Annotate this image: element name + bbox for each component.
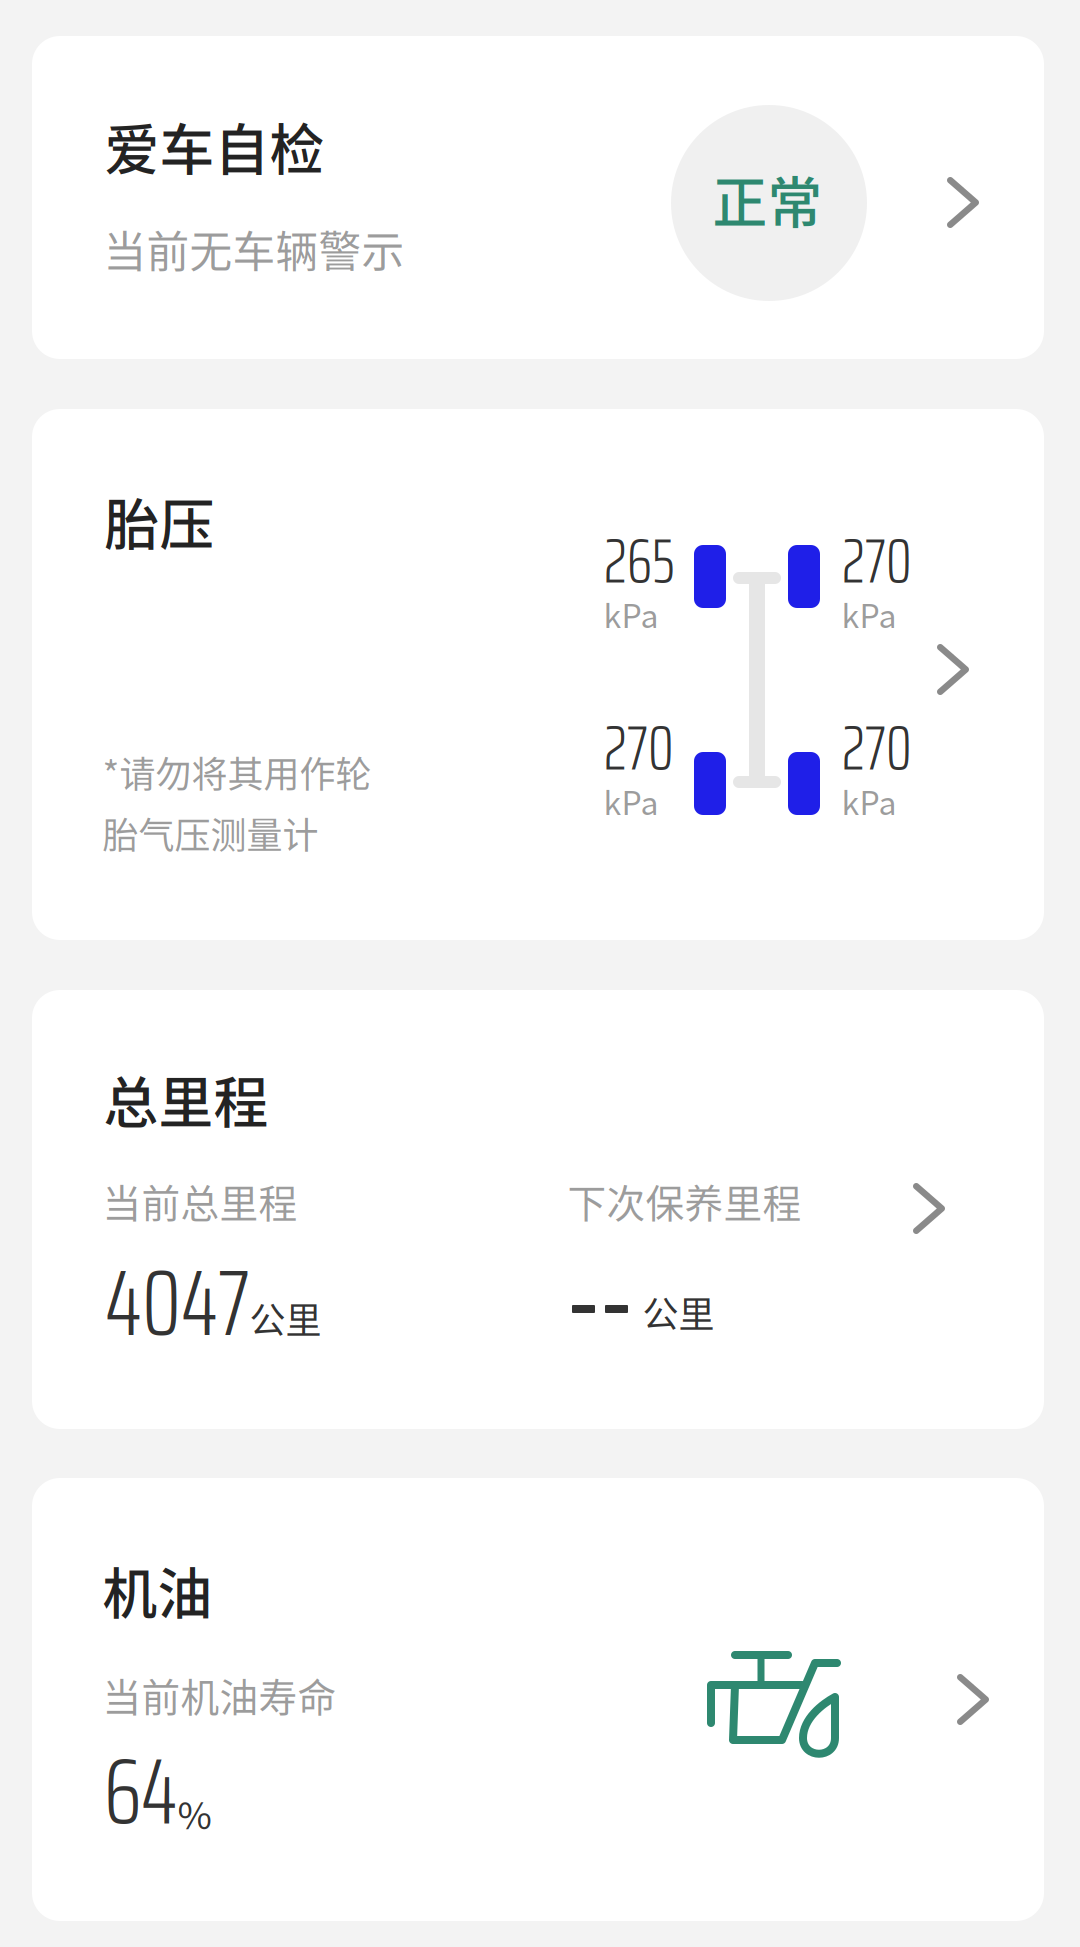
staticText: kPa [841, 778, 896, 824]
staticText: 270 [842, 700, 912, 796]
staticText: 公里 [249, 1292, 321, 1344]
staticText: 当前总里程 [102, 1173, 297, 1229]
button[interactable]: 胎压 [32, 409, 1044, 940]
button[interactable]: 机油 [32, 1478, 1044, 1921]
staticText: kPa [841, 591, 896, 637]
staticText: 265 [604, 513, 675, 609]
staticText: 胎压 [104, 481, 214, 560]
staticText: 公里 [642, 1286, 714, 1338]
staticText: *请勿将其用作轮 [102, 746, 371, 798]
staticText: kPa [603, 591, 658, 637]
staticText: 64 [104, 1719, 178, 1864]
staticText: 当前无车辆警示 [103, 218, 404, 280]
staticText: kPa [603, 778, 658, 824]
staticText: 正常 [712, 159, 822, 238]
button[interactable]: 爱车自检 [32, 36, 1044, 359]
staticText: 下次保养里程 [567, 1173, 801, 1229]
staticText: % [177, 1786, 211, 1840]
staticText: 4047 [105, 1229, 250, 1376]
staticText: 270 [604, 700, 674, 796]
staticText: 总里程 [103, 1059, 268, 1138]
staticText: 270 [842, 513, 912, 609]
staticText: 胎气压测量计 [102, 807, 318, 859]
staticText: 爱车自检 [104, 106, 324, 185]
button[interactable]: 总里程 [32, 990, 1044, 1429]
staticText: 机油 [102, 1550, 212, 1629]
staticText: 当前机油寿命 [102, 1667, 336, 1723]
